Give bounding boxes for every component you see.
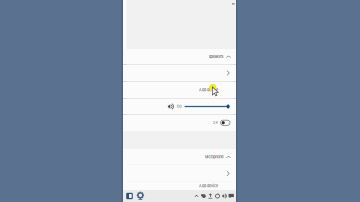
button[interactable]: Settings (137, 191, 144, 201)
button[interactable]: Weather (201, 191, 206, 201)
button[interactable]: Open device settings (123, 165, 236, 182)
button[interactable]: Microphone (123, 149, 236, 165)
staticText: 100 (176, 104, 181, 109)
button[interactable]: Open device settings (123, 64, 236, 81)
button[interactable]: File Explorer (126, 191, 133, 201)
button[interactable]: Speakers (123, 49, 236, 64)
staticText: Add device (199, 88, 218, 92)
staticText: Off (212, 121, 217, 125)
button[interactable]: Show hidden icons (194, 191, 199, 201)
button[interactable]: Safely remove hardware (208, 191, 213, 201)
staticText: Microphone (204, 155, 223, 159)
button[interactable]: Input method (228, 191, 234, 201)
button[interactable]: Mono audio toggle (220, 120, 230, 125)
button[interactable]: Add device (123, 182, 236, 190)
button[interactable]: Updates (215, 191, 220, 201)
staticText: Add device (199, 184, 218, 188)
button[interactable]: Volume (222, 191, 227, 201)
button[interactable]: Add device (123, 81, 236, 98)
staticText: Speakers (208, 54, 223, 59)
